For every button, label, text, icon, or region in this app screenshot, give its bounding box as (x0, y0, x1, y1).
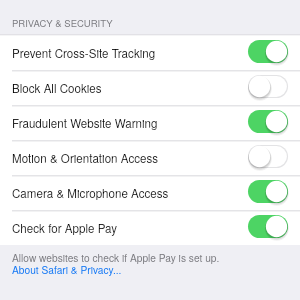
button[interactable]: Block All Cookies (0, 70, 300, 105)
button[interactable]: Prevent Cross-Site Tracking, on (248, 40, 288, 63)
button[interactable]: Camera & Microphone Access (0, 175, 300, 210)
button[interactable]: Motion & Orientation Access (0, 140, 300, 175)
staticText: Fraudulent Website Warning (12, 115, 158, 132)
staticText: About Safari & Privacy... (12, 262, 122, 277)
staticText: Check for Apple Pay (12, 220, 117, 237)
staticText: Prevent Cross-Site Tracking (12, 45, 156, 62)
button[interactable]: Block All Cookies, off (248, 75, 288, 98)
button[interactable]: Fraudulent Website Warning, on (248, 110, 288, 133)
button[interactable]: Prevent Cross-Site Tracking (0, 35, 300, 70)
staticText: Block All Cookies (12, 80, 102, 97)
staticText: Motion & Orientation Access (12, 150, 159, 167)
button[interactable]: Fraudulent Website Warning (0, 105, 300, 140)
button[interactable]: Check for Apple Pay (0, 210, 300, 245)
staticText: Allow websites to check if Apple Pay is … (12, 250, 220, 265)
button[interactable]: Check for Apple Pay, on (248, 215, 288, 238)
button[interactable]: About Safari & Privacy... (0, 265, 300, 281)
staticText: Camera & Microphone Access (12, 185, 169, 202)
button[interactable]: Camera & Microphone Access, on (248, 180, 288, 203)
staticText: PRIVACY & SECURITY (12, 16, 113, 30)
button[interactable]: Motion & Orientation Access, off (248, 145, 288, 168)
